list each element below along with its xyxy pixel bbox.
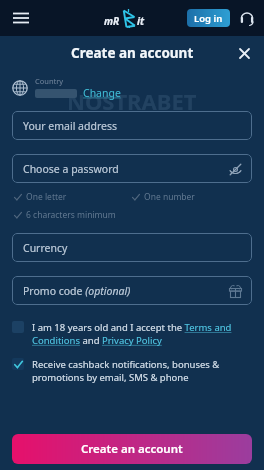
staticText: 6 characters minimum bbox=[26, 209, 116, 221]
staticText: Receive cashback notifications, bonuses … bbox=[32, 358, 252, 384]
button[interactable]: Menu bbox=[8, 5, 34, 31]
button[interactable]: Country bbox=[12, 76, 264, 100]
staticText: Change bbox=[83, 86, 121, 100]
staticText: Currency bbox=[23, 241, 68, 255]
staticText: Create an account bbox=[71, 44, 194, 62]
button[interactable]: Your email address bbox=[12, 111, 252, 140]
staticText: Your email address bbox=[23, 119, 118, 133]
staticText: mR bbox=[104, 14, 120, 28]
staticText: it bbox=[137, 14, 145, 28]
button[interactable]: Receive cashback notifications, bonuses … bbox=[12, 358, 252, 384]
staticText: I am 18 years old and I accept the Terms… bbox=[32, 321, 252, 347]
staticText: One letter bbox=[26, 191, 67, 203]
staticText: Choose a password bbox=[23, 162, 119, 176]
button[interactable]: I am 18 years old and I accept the Terms… bbox=[12, 321, 252, 347]
button[interactable]: Promo code info bbox=[226, 282, 244, 300]
button[interactable]: Close bbox=[232, 41, 256, 65]
button[interactable]: Promo code (optional) bbox=[12, 276, 252, 305]
button[interactable]: Currency bbox=[12, 233, 252, 262]
button[interactable]: Create an account bbox=[12, 434, 252, 464]
staticText: NOSTRABET bbox=[67, 86, 197, 116]
button[interactable]: Change bbox=[83, 86, 121, 100]
staticText: Country bbox=[35, 76, 64, 86]
staticText: Promo code (optional) bbox=[23, 284, 131, 298]
staticText: One number bbox=[144, 191, 195, 203]
staticText: Create an account bbox=[81, 441, 183, 457]
button[interactable]: Support bbox=[236, 7, 258, 29]
button[interactable]: Choose a password bbox=[12, 154, 252, 183]
button[interactable]: Show password bbox=[226, 160, 244, 178]
button[interactable]: Log in bbox=[187, 9, 230, 27]
staticText: Log in bbox=[194, 12, 223, 25]
